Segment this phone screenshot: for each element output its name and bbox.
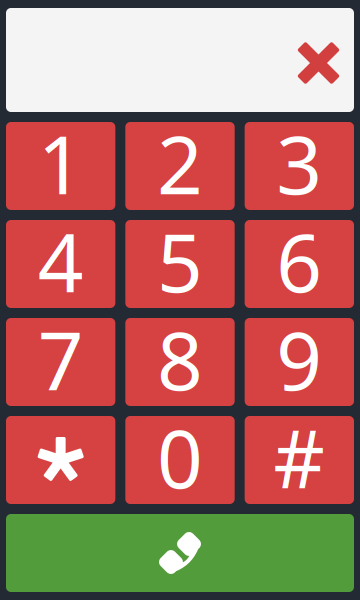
staticText: 6 xyxy=(276,208,322,296)
button[interactable]: 5 xyxy=(125,220,235,308)
button[interactable]: # xyxy=(245,416,354,504)
button[interactable]: 9 xyxy=(245,318,354,406)
staticText: 9 xyxy=(276,306,322,394)
button[interactable]: 1 xyxy=(6,122,115,210)
button[interactable]: 3 xyxy=(245,122,354,210)
button[interactable]: 0 xyxy=(125,416,235,504)
staticText: 5 xyxy=(157,208,203,296)
button[interactable]: 2 xyxy=(125,122,235,210)
button[interactable]: 4 xyxy=(6,220,115,308)
button[interactable]: Star xyxy=(6,416,115,504)
staticText: 3 xyxy=(276,110,322,198)
staticText: 0 xyxy=(157,404,203,492)
button[interactable]: Clear xyxy=(285,18,354,101)
staticText: 2 xyxy=(157,110,203,198)
staticText: 7 xyxy=(38,306,84,394)
button[interactable]: 6 xyxy=(245,220,354,308)
button[interactable]: 7 xyxy=(6,318,115,406)
button[interactable]: Call xyxy=(6,514,354,592)
button[interactable]: 8 xyxy=(125,318,235,406)
staticText: 1 xyxy=(38,110,84,198)
staticText: 8 xyxy=(157,306,203,394)
staticText: # xyxy=(273,404,325,492)
staticText: 4 xyxy=(38,208,84,296)
